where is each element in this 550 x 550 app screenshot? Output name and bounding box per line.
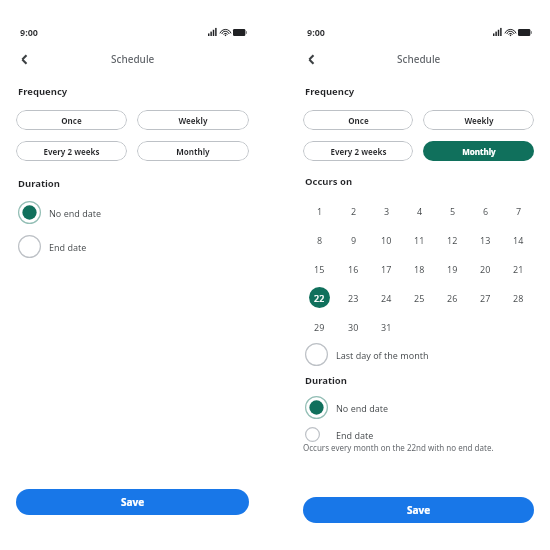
button[interactable]: End date [305, 427, 548, 442]
staticText: Every 2 weeks [43, 146, 100, 157]
staticText: Save [121, 495, 145, 509]
button[interactable]: 19 [442, 258, 463, 279]
button[interactable]: Save [16, 489, 249, 515]
staticText: 21 [513, 263, 524, 275]
staticText: 27 [480, 292, 491, 304]
staticText: 2 [351, 205, 357, 217]
staticText: 9 [351, 234, 357, 246]
button[interactable]: 20 [475, 258, 496, 279]
staticText: No end date [49, 207, 102, 219]
button[interactable]: 31 [376, 316, 397, 337]
button[interactable]: 11 [409, 229, 430, 250]
button[interactable]: Last day of the month [305, 343, 548, 366]
button[interactable]: 8 [309, 229, 330, 250]
staticText: Once [348, 115, 369, 126]
button[interactable]: No end date [18, 201, 263, 224]
button[interactable]: 7 [508, 200, 529, 221]
button[interactable]: 1 [309, 200, 330, 221]
staticText: 25 [414, 292, 425, 304]
staticText: 17 [381, 263, 392, 275]
button[interactable]: 25 [409, 287, 430, 308]
staticText: 3 [384, 205, 390, 217]
staticText: 9:00 [307, 26, 325, 38]
button[interactable]: Weekly [137, 110, 249, 130]
staticText: Monthly [462, 146, 496, 157]
button[interactable]: 6 [475, 200, 496, 221]
button[interactable]: No end date [305, 396, 548, 419]
button[interactable]: 9 [343, 229, 364, 250]
staticText: 30 [348, 321, 359, 333]
button[interactable]: 14 [508, 229, 529, 250]
button[interactable]: 3 [376, 200, 397, 221]
staticText: Weekly [178, 115, 208, 126]
staticText: Occurs on [305, 175, 353, 188]
staticText: 10 [381, 234, 392, 246]
staticText: Occurs every month on the 22nd with no e… [303, 442, 494, 453]
staticText: Every 2 weeks [330, 146, 387, 157]
staticText: No end date [336, 402, 389, 414]
staticText: 1 [317, 205, 323, 217]
staticText: 15 [314, 263, 325, 275]
staticText: 9:00 [20, 26, 38, 38]
button[interactable]: Every 2 weeks [16, 141, 127, 161]
button[interactable]: 22 [309, 287, 330, 308]
staticText: Duration [305, 374, 347, 387]
staticText: Frequency [305, 85, 355, 98]
button[interactable]: Every 2 weeks [303, 141, 413, 161]
staticText: 23 [348, 292, 359, 304]
button[interactable]: 18 [409, 258, 430, 279]
staticText: 7 [516, 205, 522, 217]
staticText: 19 [447, 263, 458, 275]
staticText: 20 [480, 263, 491, 275]
staticText: Frequency [18, 85, 68, 98]
staticText: 24 [381, 292, 392, 304]
staticText: 16 [348, 263, 359, 275]
button[interactable]: 13 [475, 229, 496, 250]
staticText: 31 [381, 321, 392, 333]
button[interactable]: 29 [309, 316, 330, 337]
button[interactable]: 15 [309, 258, 330, 279]
button[interactable]: 28 [508, 287, 529, 308]
staticText: 12 [447, 234, 458, 246]
staticText: 5 [450, 205, 456, 217]
button[interactable]: 2 [343, 200, 364, 221]
button[interactable]: Once [16, 110, 127, 130]
button[interactable]: Once [303, 110, 413, 130]
staticText: Last day of the month [336, 349, 429, 361]
staticText: 26 [447, 292, 458, 304]
staticText: Schedule [111, 52, 155, 66]
staticText: 22 [314, 292, 325, 304]
button[interactable]: 26 [442, 287, 463, 308]
button[interactable]: Back [299, 47, 323, 71]
button[interactable]: End date [18, 235, 263, 258]
button[interactable]: 27 [475, 287, 496, 308]
button[interactable]: Weekly [423, 110, 534, 130]
staticText: Schedule [397, 52, 441, 66]
button[interactable]: 16 [343, 258, 364, 279]
staticText: 6 [483, 205, 489, 217]
staticText: 8 [317, 234, 323, 246]
staticText: Duration [18, 177, 60, 190]
staticText: End date [336, 429, 374, 441]
button[interactable]: 30 [343, 316, 364, 337]
staticText: 14 [513, 234, 524, 246]
staticText: Monthly [176, 146, 210, 157]
button[interactable]: Back [12, 47, 36, 71]
button[interactable]: 17 [376, 258, 397, 279]
staticText: 13 [480, 234, 491, 246]
button[interactable]: 24 [376, 287, 397, 308]
button[interactable]: 4 [409, 200, 430, 221]
button[interactable]: 21 [508, 258, 529, 279]
staticText: Once [61, 115, 82, 126]
button[interactable]: 5 [442, 200, 463, 221]
button[interactable]: Monthly [137, 141, 249, 161]
button[interactable]: 10 [376, 229, 397, 250]
button[interactable]: Save [303, 497, 534, 523]
staticText: 11 [414, 234, 425, 246]
button[interactable]: 12 [442, 229, 463, 250]
staticText: 29 [314, 321, 325, 333]
button[interactable]: Monthly [423, 141, 534, 161]
staticText: 4 [417, 205, 423, 217]
staticText: Weekly [464, 115, 494, 126]
button[interactable]: 23 [343, 287, 364, 308]
